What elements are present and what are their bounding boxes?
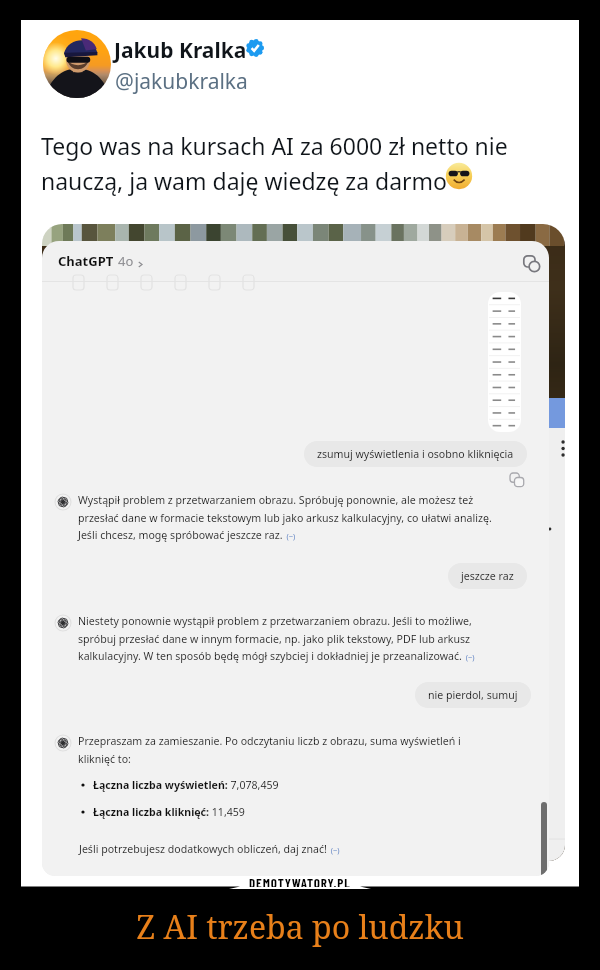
staticText: Wystąpił problem z przetwarzaniem obrazu… — [78, 493, 492, 542]
button[interactable]: zsumuj wyświetlenia i osobno kliknięcia — [304, 441, 527, 467]
button[interactable]: New chat — [517, 249, 545, 277]
staticText: Jeśli potrzebujesz dodatkowych obliczeń,… — [79, 842, 340, 856]
staticText: ChatGPT — [58, 252, 114, 270]
button[interactable]: nie pierdol, sumuj — [415, 682, 531, 708]
button[interactable]: Attached screenshot — [488, 292, 521, 432]
staticText: 4o — [118, 252, 134, 270]
staticText: Łączna liczba kliknięć: 11,459 — [93, 805, 245, 819]
button[interactable]: jeszcze raz — [448, 563, 527, 589]
staticText: Łączna liczba wyświetleń: 7,078,459 — [93, 778, 279, 792]
staticText: Przepraszam za zamieszanie. Po odczytani… — [78, 734, 461, 766]
staticText: DEMOTYWATORY.PL — [249, 875, 351, 887]
other: Copy — [510, 473, 524, 487]
staticText: Niestety ponownie wystąpił problem z prz… — [78, 614, 475, 663]
staticText: zsumuj wyświetlenia i osobno kliknięcia — [317, 447, 514, 461]
staticText: Tego was na kursach AI za 6000 zł netto … — [41, 130, 508, 197]
staticText: jeszcze raz — [461, 569, 514, 583]
button[interactable]: ChatGPT — [58, 252, 144, 270]
staticText: Jakub Kralka — [114, 36, 247, 65]
staticText: @jakubkralka — [115, 67, 248, 96]
staticText: nie pierdol, sumuj — [428, 688, 518, 702]
staticText: Z AI trzeba po ludzku — [136, 905, 464, 949]
